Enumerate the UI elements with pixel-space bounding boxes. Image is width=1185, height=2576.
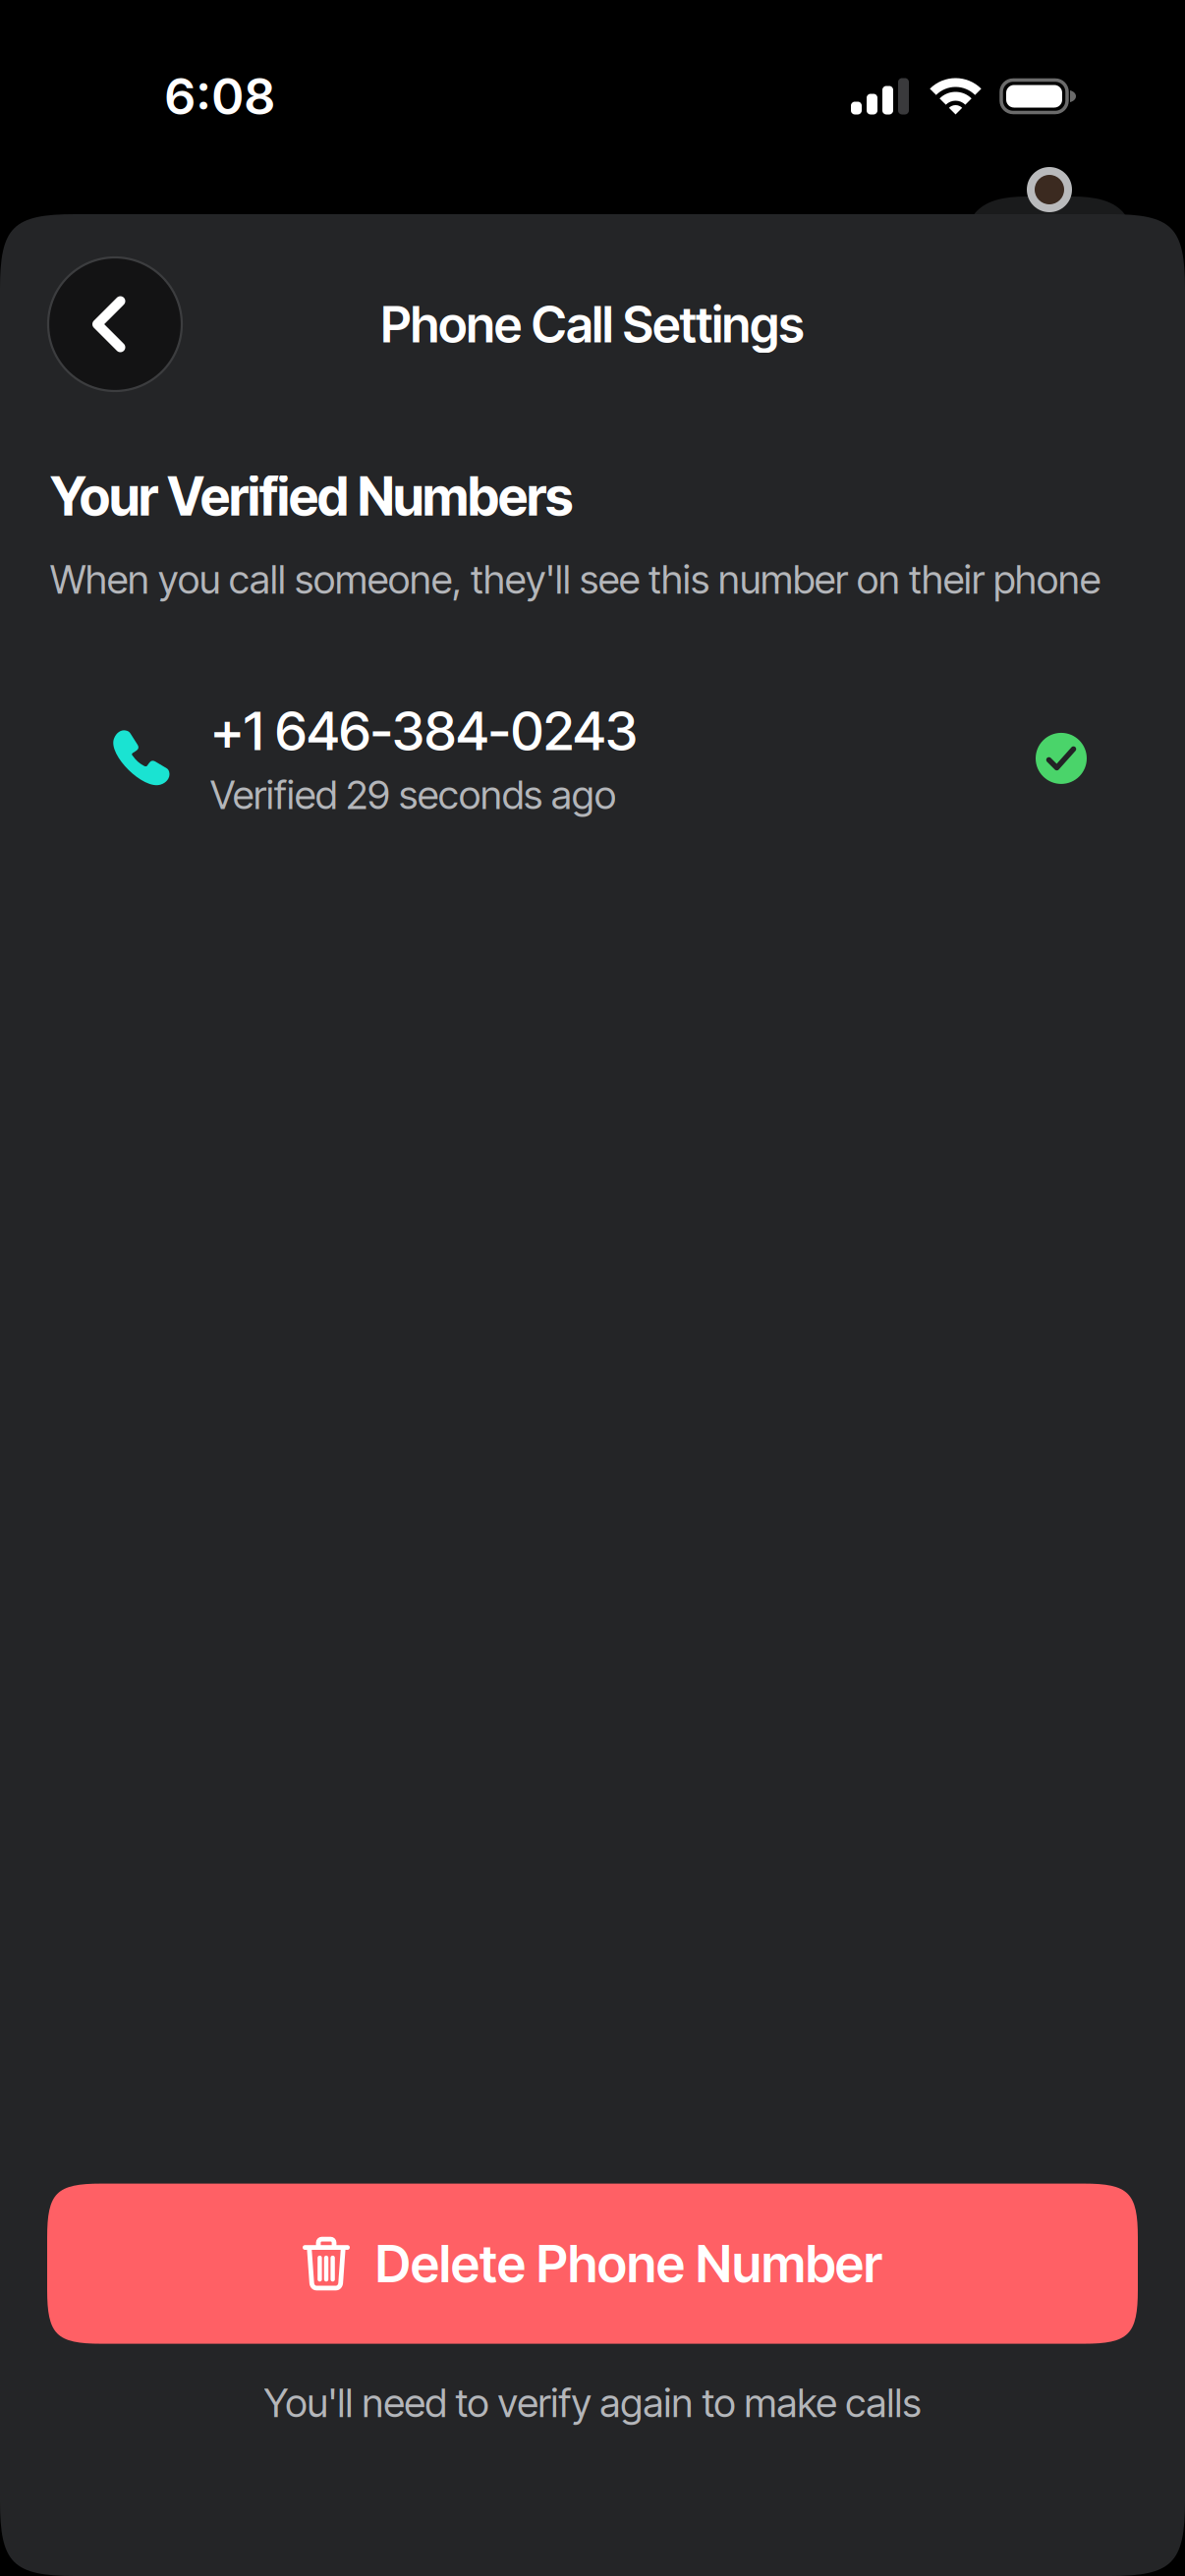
- staticText: Your Verified Numbers: [50, 465, 573, 528]
- staticText: When you call someone, they'll see this …: [50, 556, 1100, 603]
- button[interactable]: Delete Phone Number: [47, 2184, 1138, 2344]
- staticText: +1 646-384-0243: [210, 698, 638, 763]
- staticText: Phone Call Settings: [381, 294, 804, 354]
- staticText: Delete Phone Number: [375, 2233, 882, 2295]
- button[interactable]: Back: [48, 257, 182, 391]
- staticText: You'll need to verify again to make call…: [264, 2379, 921, 2427]
- staticText: 6:08: [164, 66, 275, 126]
- staticText: Verified 29 seconds ago: [210, 771, 616, 819]
